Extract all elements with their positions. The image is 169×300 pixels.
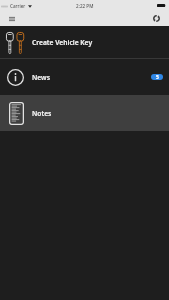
staticText: 5 [156,74,159,80]
button[interactable]: Refresh [149,12,163,26]
button[interactable]: Menu [5,12,19,26]
staticText: Notes [32,109,52,118]
button[interactable]: News [0,59,169,95]
staticText: Carrier [10,3,26,9]
button[interactable]: Notes [0,95,169,131]
staticText: 2:22 PM [76,3,94,9]
staticText: News [32,73,50,82]
staticText: Create Vehicle Key [32,38,93,47]
button[interactable]: Create Vehicle Key [0,26,169,59]
